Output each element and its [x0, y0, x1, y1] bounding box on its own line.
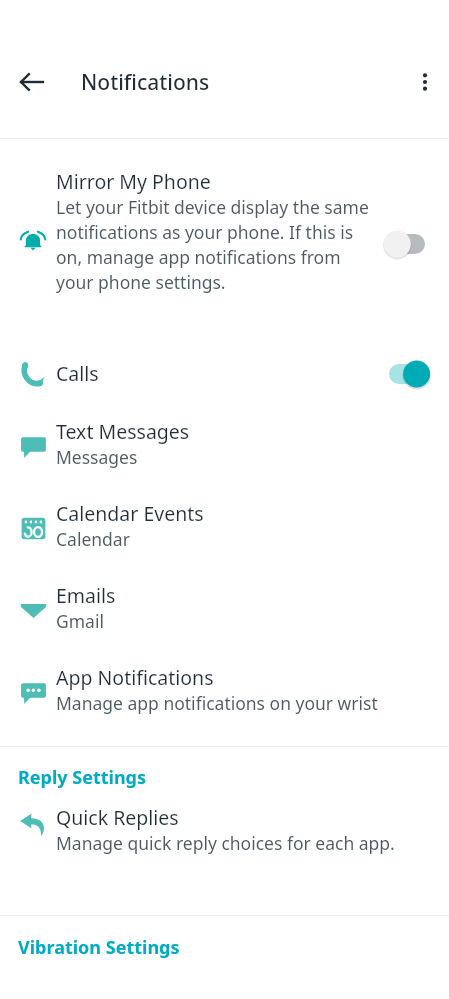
staticText: Quick Replies [56, 804, 179, 831]
staticText: Let your Fitbit device display the same … [56, 195, 382, 294]
staticText: App Notifications [56, 664, 214, 691]
button[interactable]: App Notifications [0, 651, 449, 733]
staticText: Manage app notifications on your wrist [56, 691, 378, 715]
button[interactable]: Reply Settings [0, 765, 449, 790]
button[interactable]: Vibration Settings [0, 935, 449, 960]
button[interactable]: Emails [0, 569, 449, 651]
staticText: Mirror My Phone [56, 168, 211, 195]
button[interactable]: Quick Replies [0, 804, 449, 899]
staticText: Manage quick reply choices for each app. [56, 831, 395, 855]
staticText: Messages [56, 445, 138, 469]
button[interactable]: Back [10, 60, 54, 104]
staticText: Calendar [56, 527, 130, 551]
button[interactable]: More options [403, 60, 447, 104]
button[interactable]: Calls [0, 342, 449, 405]
staticText: Notifications [81, 68, 210, 97]
staticText: Gmail [56, 609, 104, 633]
staticText: Text Messages [56, 418, 190, 445]
staticText: Calls [56, 360, 99, 387]
button[interactable]: Mirror My Phone [0, 139, 449, 342]
staticText: Reply Settings [18, 765, 147, 790]
button[interactable]: Calendar Events [0, 487, 449, 569]
staticText: Vibration Settings [18, 935, 180, 960]
staticText: Calendar Events [56, 500, 204, 527]
button[interactable]: Text Messages [0, 405, 449, 487]
staticText: Emails [56, 582, 116, 609]
